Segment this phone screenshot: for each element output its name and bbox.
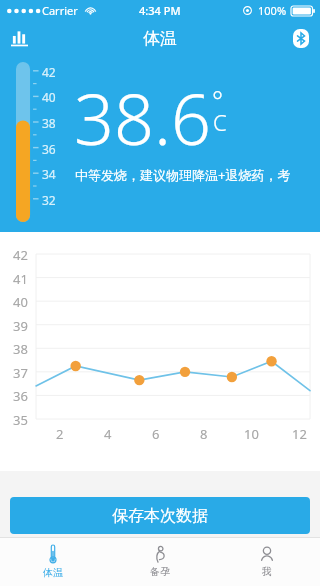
button[interactable]: Bluetooth bbox=[282, 21, 320, 56]
staticText: 保存本次数据 bbox=[112, 506, 208, 526]
staticText: 12 bbox=[292, 425, 307, 443]
staticText: Carrier bbox=[42, 3, 78, 18]
staticText: 41 bbox=[13, 270, 28, 288]
staticText: 37 bbox=[13, 364, 28, 382]
button[interactable]: History chart bbox=[0, 21, 38, 56]
button[interactable]: 备孕 bbox=[106, 538, 213, 586]
staticText: 42 bbox=[13, 246, 28, 264]
staticText: 39 bbox=[13, 317, 28, 335]
staticText: 体温 bbox=[143, 28, 177, 49]
staticText: 40 bbox=[42, 89, 56, 105]
staticText: 6 bbox=[152, 425, 160, 443]
staticText: 8 bbox=[200, 425, 208, 443]
staticText: 38 bbox=[42, 115, 56, 131]
staticText: 40 bbox=[13, 293, 28, 311]
staticText: 42 bbox=[42, 64, 56, 80]
staticText: ° bbox=[212, 82, 224, 117]
staticText: 我 bbox=[262, 565, 272, 578]
staticText: C bbox=[213, 107, 227, 137]
button[interactable]: 体温 bbox=[0, 538, 106, 586]
staticText: 32 bbox=[42, 192, 56, 208]
staticText: 中等发烧，建议物理降温+退烧药，考 bbox=[75, 166, 291, 184]
staticText: 2 bbox=[56, 425, 64, 443]
staticText: 36 bbox=[42, 141, 56, 157]
staticText: 38.6 bbox=[74, 70, 211, 165]
staticText: 4 bbox=[104, 425, 112, 443]
button[interactable]: 保存本次数据 bbox=[10, 497, 310, 534]
staticText: 36 bbox=[13, 387, 28, 405]
staticText: 10 bbox=[244, 425, 259, 443]
staticText: 35 bbox=[13, 411, 28, 429]
staticText: 34 bbox=[42, 166, 56, 182]
staticText: 4:34 PM bbox=[139, 3, 181, 18]
staticText: 100% bbox=[258, 3, 287, 18]
button[interactable]: 我 bbox=[213, 538, 320, 586]
staticText: 备孕 bbox=[150, 565, 170, 578]
staticText: 38 bbox=[13, 340, 28, 358]
staticText: 体温 bbox=[43, 566, 63, 579]
